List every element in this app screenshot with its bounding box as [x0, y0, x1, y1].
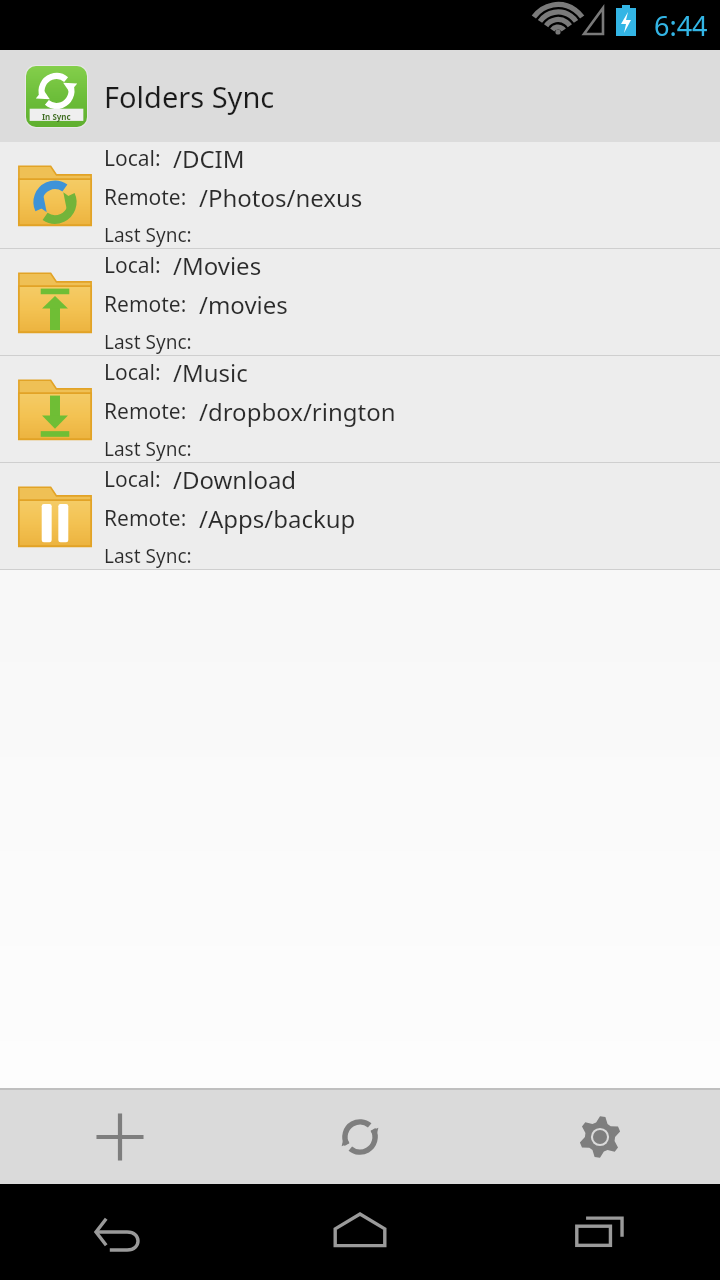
button[interactable]: Back	[0, 1184, 240, 1280]
button[interactable]: Home	[240, 1184, 480, 1280]
staticText: Last Sync:	[104, 329, 192, 355]
staticText: Remote:	[104, 397, 187, 426]
staticText: /Music	[173, 356, 248, 389]
staticText: Last Sync:	[104, 436, 192, 462]
staticText: In Sync	[42, 111, 71, 122]
staticText: Folders Sync	[104, 77, 275, 116]
staticText: Local:	[104, 144, 161, 173]
staticText: Local:	[104, 358, 161, 387]
staticText: /DCIM	[173, 142, 245, 175]
staticText: Last Sync:	[104, 222, 192, 248]
staticText: /dropbox/rington	[199, 395, 396, 428]
staticText: /Download	[173, 463, 297, 496]
staticText: Last Sync:	[104, 543, 192, 569]
button[interactable]: Local:	[0, 249, 720, 355]
staticText: Remote:	[104, 290, 187, 319]
staticText: /Movies	[173, 249, 262, 282]
button[interactable]: Local:	[0, 142, 720, 248]
staticText: 6:44	[654, 7, 708, 44]
button[interactable]: Local:	[0, 463, 720, 569]
button[interactable]: Settings	[480, 1090, 720, 1184]
staticText: Remote:	[104, 183, 187, 212]
staticText: Local:	[104, 251, 161, 280]
button[interactable]: Local:	[0, 356, 720, 462]
button[interactable]: Add folder pair	[0, 1090, 240, 1184]
button[interactable]: Sync now	[240, 1090, 480, 1184]
button[interactable]: Recent apps	[480, 1184, 720, 1280]
staticText: /movies	[199, 288, 288, 321]
staticText: /Apps/backup	[199, 502, 356, 535]
staticText: Local:	[104, 465, 161, 494]
staticText: /Photos/nexus	[199, 181, 363, 214]
staticText: Remote:	[104, 504, 187, 533]
